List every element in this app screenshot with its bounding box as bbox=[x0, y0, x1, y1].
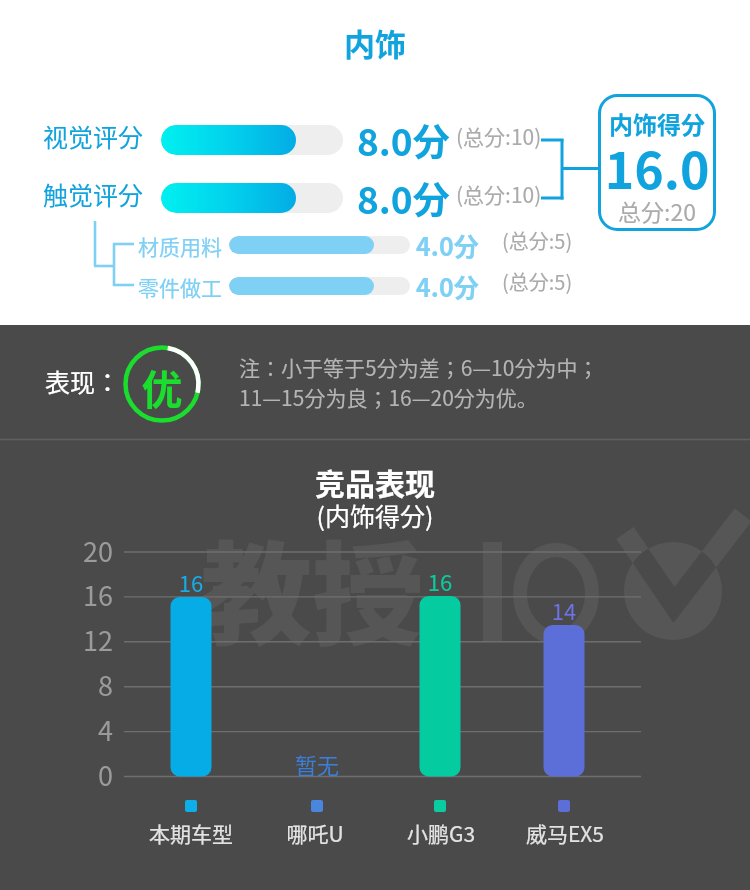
staticText: 4.0分 bbox=[416, 268, 479, 304]
staticText: 优 bbox=[123, 357, 201, 416]
staticText: 暂无 bbox=[277, 748, 357, 780]
button[interactable]: 哪吒U bbox=[255, 818, 375, 848]
staticText: 4 bbox=[56, 710, 113, 749]
staticText: 内饰得分 bbox=[598, 106, 716, 141]
staticText: 16 bbox=[56, 575, 113, 614]
staticText: 小鹏G3 bbox=[381, 818, 501, 848]
staticText: 16 bbox=[400, 565, 480, 597]
staticText: 威马EX5 bbox=[505, 818, 625, 848]
staticText: 内饰 bbox=[0, 20, 750, 65]
staticText: 0 bbox=[56, 755, 113, 794]
staticText: 触觉评分 bbox=[43, 176, 144, 212]
staticText: 8.0分 bbox=[357, 113, 450, 167]
staticText: 14 bbox=[524, 594, 604, 626]
staticText: (总分:5) bbox=[502, 267, 573, 296]
staticText: 材质用料 bbox=[138, 231, 222, 261]
staticText: 视觉评分 bbox=[43, 118, 144, 154]
staticText: 竞品表现 bbox=[0, 460, 750, 503]
staticText: 8.0分 bbox=[357, 171, 450, 225]
button[interactable] bbox=[598, 94, 716, 231]
staticText: 16.0 bbox=[598, 131, 716, 203]
staticText: (内饰得分) bbox=[0, 497, 750, 533]
staticText: (总分:10) bbox=[456, 121, 542, 151]
button[interactable]: 威马EX5 bbox=[505, 818, 625, 848]
staticText: 8 bbox=[56, 665, 113, 704]
staticText: 4.0分 bbox=[416, 227, 479, 263]
staticText: 20 bbox=[56, 531, 113, 570]
staticText: 教授 bbox=[200, 506, 424, 668]
button[interactable]: 小鹏G3 bbox=[381, 818, 501, 848]
staticText: 表现： bbox=[45, 363, 121, 399]
staticText: 零件做工 bbox=[138, 272, 222, 302]
staticText: (总分:10) bbox=[456, 179, 542, 209]
staticText: 16 bbox=[151, 566, 231, 598]
staticText: 哪吒U bbox=[255, 818, 375, 848]
staticText: (总分:5) bbox=[502, 226, 573, 255]
staticText: 12 bbox=[56, 620, 113, 659]
staticText: 11—15分为良；16—20分为优。 bbox=[239, 382, 538, 412]
staticText: 总分:20 bbox=[598, 194, 716, 227]
button[interactable]: 本期车型 bbox=[131, 818, 251, 848]
staticText: 本期车型 bbox=[131, 818, 251, 848]
staticText: 注：小于等于5分为差；6—10分为中； bbox=[239, 352, 599, 382]
